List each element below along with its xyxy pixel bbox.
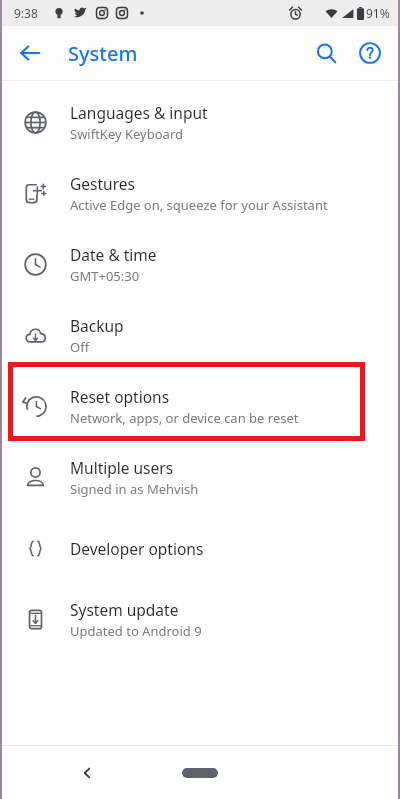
staticText: SwiftKey Keyboard bbox=[70, 125, 184, 143]
button[interactable]: Backup bbox=[0, 300, 400, 371]
button[interactable]: Back bbox=[8, 31, 52, 75]
staticText: 9:38 bbox=[14, 5, 38, 21]
button[interactable]: Developer options bbox=[0, 513, 400, 584]
button[interactable]: System update bbox=[0, 584, 400, 655]
button[interactable]: Reset options bbox=[0, 371, 400, 442]
button[interactable]: Languages & input bbox=[0, 87, 400, 158]
button[interactable]: Date & time bbox=[0, 229, 400, 300]
staticText: Off bbox=[70, 338, 90, 356]
staticText: Gestures bbox=[70, 173, 135, 194]
button[interactable]: Help bbox=[348, 31, 392, 75]
button[interactable]: Multiple users bbox=[0, 442, 400, 513]
staticText: Signed in as Mehvish bbox=[70, 480, 199, 498]
button[interactable]: Back bbox=[66, 752, 108, 794]
button[interactable]: Home bbox=[182, 768, 218, 778]
staticText: Reset options bbox=[70, 386, 170, 407]
staticText: GMT+05:30 bbox=[70, 267, 140, 285]
staticText: Updated to Android 9 bbox=[70, 622, 202, 640]
staticText: Network, apps, or device can be reset bbox=[70, 409, 299, 427]
staticText: Backup bbox=[70, 315, 124, 336]
staticText: Date & time bbox=[70, 244, 157, 265]
button[interactable]: Search bbox=[304, 31, 348, 75]
button[interactable]: Gestures bbox=[0, 158, 400, 229]
staticText: Active Edge on, squeeze for your Assista… bbox=[70, 196, 328, 214]
staticText: Developer options bbox=[70, 538, 204, 559]
staticText: System update bbox=[70, 599, 179, 620]
staticText: 91% bbox=[366, 5, 390, 21]
staticText: Multiple users bbox=[70, 457, 174, 478]
staticText: System bbox=[68, 40, 138, 67]
staticText: Languages & input bbox=[70, 102, 208, 123]
